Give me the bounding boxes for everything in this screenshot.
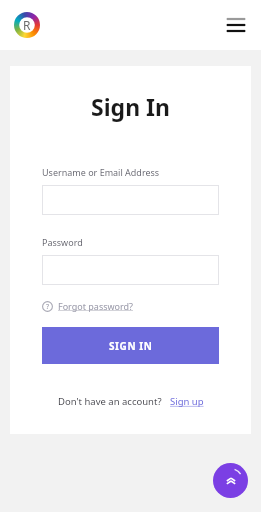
staticText: Sign In xyxy=(42,91,219,122)
staticText: Don't have an account? xyxy=(58,395,162,408)
button[interactable]: Username or Email Address field xyxy=(42,185,219,215)
staticText: Password xyxy=(42,236,83,248)
button[interactable]: Sign up xyxy=(170,395,204,408)
staticText: Username or Email Address xyxy=(42,166,160,178)
staticText: Forgot password? xyxy=(58,300,134,312)
button[interactable]: Home logo xyxy=(14,12,40,38)
button[interactable]: ? xyxy=(42,300,134,312)
button[interactable]: SIGN IN xyxy=(42,327,219,364)
staticText: SIGN IN xyxy=(109,339,153,353)
button[interactable]: Password field xyxy=(42,255,219,285)
staticText: Sign up xyxy=(170,395,204,408)
staticText: ? xyxy=(46,302,50,312)
button[interactable]: Scroll to top xyxy=(213,463,248,498)
staticText: R xyxy=(23,17,31,33)
button[interactable]: Menu xyxy=(221,10,251,40)
